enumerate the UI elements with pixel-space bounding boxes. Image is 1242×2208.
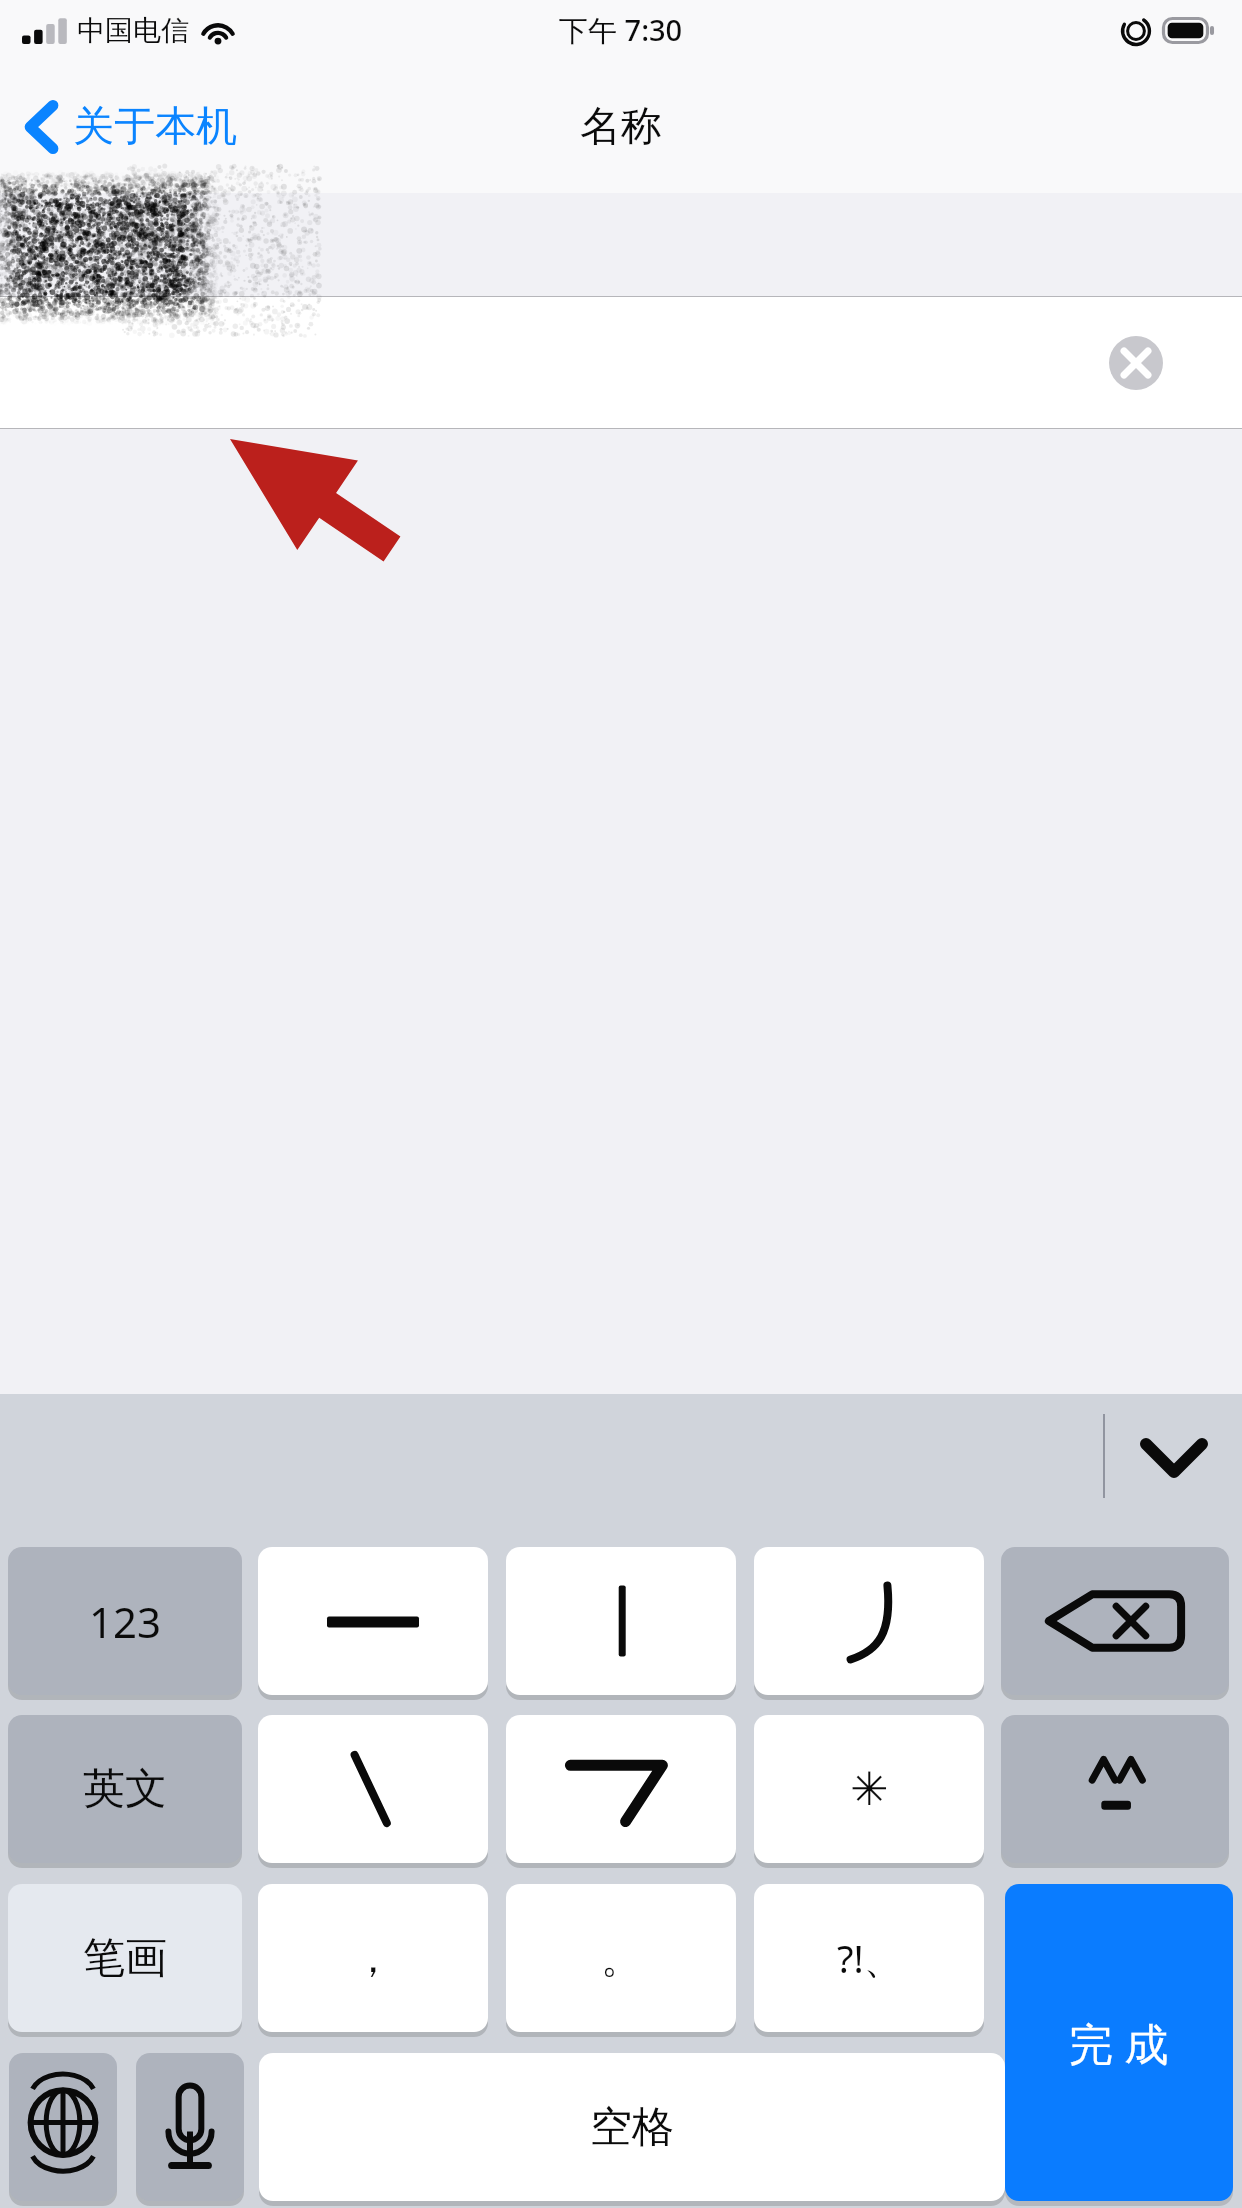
button[interactable]: Voice input xyxy=(136,2053,244,2201)
button[interactable]: Stroke pie xyxy=(754,1547,984,1695)
button[interactable]: Switch keyboard xyxy=(9,2053,117,2201)
button[interactable]: 完 成 xyxy=(1005,1884,1233,2201)
button[interactable]: 空格 xyxy=(259,2053,1005,2201)
staticText: 完 成 xyxy=(1069,2013,1169,2073)
button[interactable]: Clear text xyxy=(0,297,1242,428)
button[interactable]: Clear text xyxy=(1109,336,1163,390)
staticText: 123 xyxy=(89,1593,162,1650)
staticText: 名称 xyxy=(580,101,662,153)
button[interactable]: Delete xyxy=(1001,1547,1229,1695)
button[interactable]: Emoticons xyxy=(1001,1715,1229,1863)
button[interactable]: 笔画 xyxy=(8,1884,242,2032)
staticText: 英文 xyxy=(83,1763,167,1816)
button[interactable]: ✳ xyxy=(754,1715,984,1863)
staticText: ?!、 xyxy=(837,1932,902,1984)
button[interactable]: Stroke heng xyxy=(258,1547,488,1695)
button[interactable]: ， xyxy=(258,1884,488,2032)
button[interactable]: 123 xyxy=(8,1547,242,1695)
staticText: 关于本机 xyxy=(73,101,237,153)
staticText: 。 xyxy=(601,1933,641,1983)
button[interactable]: 。 xyxy=(506,1884,736,2032)
button[interactable]: Stroke shu xyxy=(506,1547,736,1695)
staticText: 中国电信 xyxy=(77,13,189,48)
staticText: 空格 xyxy=(590,2101,674,2154)
staticText: ✳ xyxy=(850,1762,889,1816)
button[interactable]: ?!、 xyxy=(754,1884,984,2032)
staticText: ， xyxy=(353,1933,393,1983)
button[interactable]: Stroke dian xyxy=(258,1715,488,1863)
staticText: 笔画 xyxy=(83,1932,167,1985)
button[interactable]: 英文 xyxy=(8,1715,242,1863)
button[interactable]: 关于本机 xyxy=(0,88,257,166)
staticText: 下午 7:30 xyxy=(559,10,683,50)
button[interactable]: Stroke zhe xyxy=(506,1715,736,1863)
button[interactable]: Hide keyboard xyxy=(1124,1416,1224,1500)
